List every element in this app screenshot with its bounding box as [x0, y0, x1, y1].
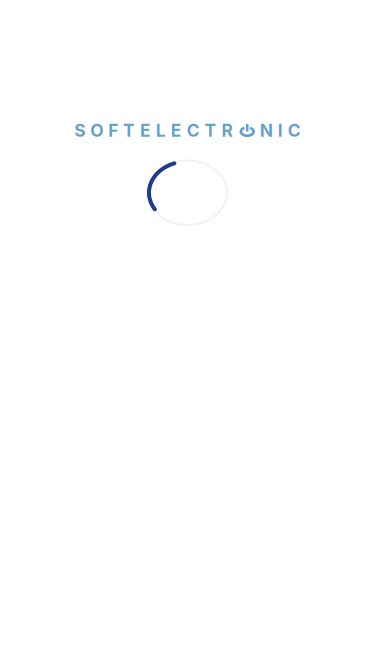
staticText: O — [90, 120, 103, 141]
staticText: E — [140, 120, 151, 141]
staticText: S — [74, 120, 85, 141]
staticText: E — [171, 120, 182, 141]
staticText: L — [156, 120, 166, 141]
staticText: C — [187, 120, 200, 141]
staticText: C — [288, 120, 301, 141]
staticText: R — [221, 120, 232, 141]
staticText: T — [123, 120, 135, 141]
staticText: N — [260, 120, 273, 141]
staticText: F — [108, 120, 118, 141]
staticText: I — [278, 120, 283, 141]
staticText: T — [205, 120, 217, 141]
